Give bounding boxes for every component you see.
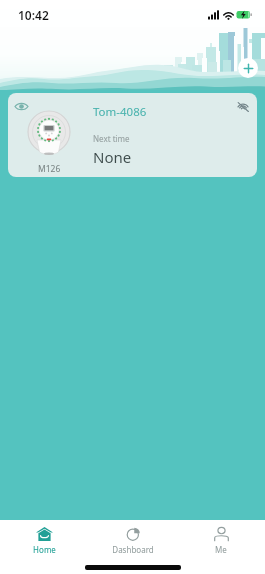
button[interactable]: Offline (234, 97, 252, 115)
button[interactable]: Home (0, 520, 89, 558)
button[interactable]: Me (177, 520, 265, 558)
button[interactable]: Visibility (8, 93, 257, 177)
button[interactable]: Add device (238, 58, 258, 78)
staticText: M126 (38, 163, 61, 175)
button[interactable]: Visibility (12, 97, 31, 116)
staticText: Next time (93, 133, 130, 144)
staticText: Me (215, 544, 227, 555)
staticText: None (93, 147, 132, 167)
staticText: Tom-4086 (93, 104, 147, 120)
staticText: Dashboard (112, 544, 154, 555)
button[interactable]: Dashboard (89, 520, 177, 558)
staticText: Home (33, 544, 56, 555)
staticText: 10:42 (18, 7, 49, 23)
